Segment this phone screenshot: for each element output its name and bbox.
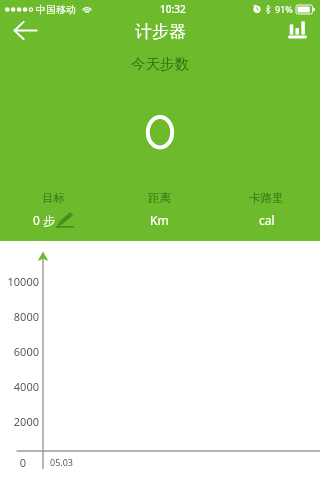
staticText: 距离	[148, 191, 171, 205]
button[interactable]: 目标	[0, 191, 106, 228]
button[interactable]: Back	[0, 8, 51, 52]
staticText: 10:32	[160, 2, 186, 16]
staticText: 中国移动	[36, 3, 76, 16]
button[interactable]: 距离	[106, 191, 213, 228]
button[interactable]: Statistics	[280, 12, 314, 46]
staticText: 卡路里	[249, 191, 284, 205]
staticText: 8000	[0, 309, 39, 324]
staticText: 4000	[0, 379, 39, 394]
staticText: 2000	[0, 414, 39, 429]
staticText: Km	[150, 212, 169, 228]
staticText: 6000	[0, 344, 39, 359]
staticText: 10000	[0, 274, 39, 289]
button[interactable]: 卡路里	[213, 191, 320, 228]
staticText: 0	[0, 455, 26, 470]
staticText: 0 步	[33, 212, 55, 228]
staticText: 今天步数	[0, 55, 320, 73]
staticText: 目标	[42, 191, 65, 205]
staticText: 91%	[275, 3, 293, 15]
staticText: 05.03	[50, 456, 74, 468]
staticText: 计步器	[135, 21, 186, 42]
staticText: cal	[259, 212, 275, 228]
